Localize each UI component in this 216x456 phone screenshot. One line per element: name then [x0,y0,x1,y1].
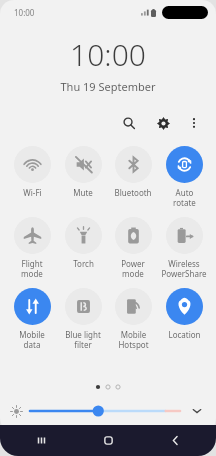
staticText: Power mode [121,258,145,279]
button[interactable]: Blue light filter [58,288,108,350]
button[interactable]: Home [82,425,134,456]
button[interactable]: Back [149,425,201,456]
staticText: 10:00 [14,7,35,18]
staticText: Blue light filter [65,329,101,350]
button[interactable]: Search [116,110,142,136]
button[interactable]: More options [182,111,206,135]
staticText: Mute [73,187,93,198]
staticText: 10:00 [0,34,216,75]
button[interactable]: Auto rotate [159,146,209,208]
button[interactable]: Mute [58,146,108,198]
staticText: Wireless PowerShare [161,258,207,279]
button[interactable]: Bluetooth [108,146,158,198]
staticText: Location [168,329,201,340]
staticText: Thu 19 September [0,79,216,94]
button[interactable]: Mobile Hotspot [108,288,158,350]
staticText: Bluetooth [114,187,152,198]
button[interactable]: Expand brightness settings [188,402,206,420]
staticText: Torch [73,258,94,269]
staticText: Mobile Hotspot [118,329,149,350]
staticText: Auto rotate [173,187,196,208]
button[interactable]: Recent apps [15,425,67,456]
button[interactable]: Power mode [108,217,158,279]
button[interactable]: Location [159,288,209,340]
staticText: Flight mode [21,258,43,279]
button[interactable]: Torch [58,217,108,269]
staticText: Mobile data [19,329,45,350]
button[interactable]: Brightness [30,401,180,421]
button[interactable]: Settings [150,110,176,136]
button[interactable]: Mobile data [7,288,57,350]
button[interactable]: Wi-Fi [7,146,57,198]
button[interactable]: Wireless PowerShare [159,217,209,279]
button[interactable]: Flight mode [7,217,57,279]
staticText: Wi-Fi [23,187,42,198]
